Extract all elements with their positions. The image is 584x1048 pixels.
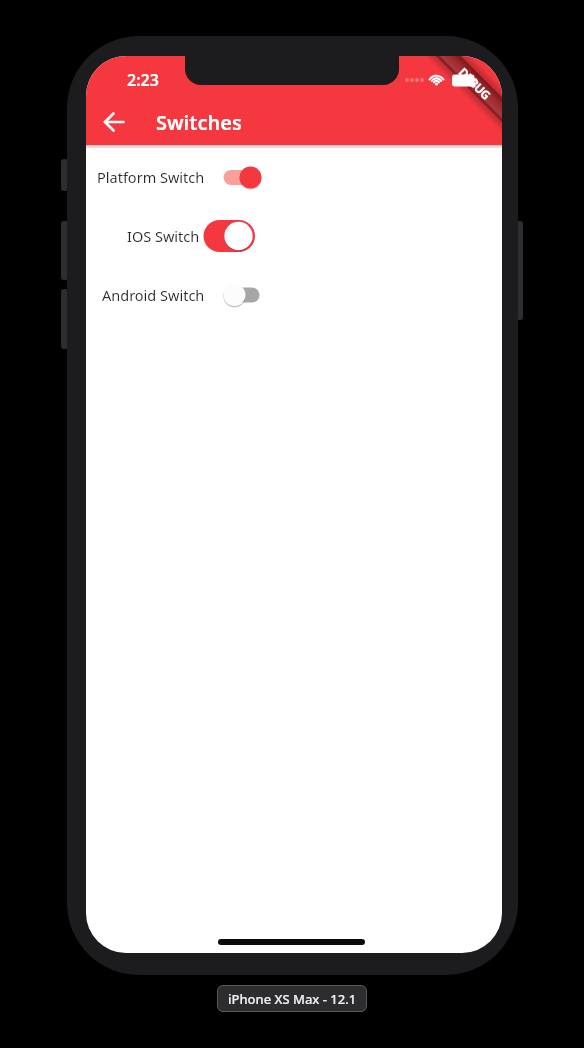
- staticText: IOS Switch: [127, 226, 200, 246]
- staticText: Platform Switch: [97, 167, 205, 187]
- staticText: iPhone XS Max - 12.1: [228, 990, 357, 1008]
- staticText: 2:23: [127, 69, 159, 90]
- staticText: DEBUG: [456, 64, 494, 103]
- staticText: Android Switch: [102, 285, 205, 305]
- staticText: Switches: [156, 109, 242, 135]
